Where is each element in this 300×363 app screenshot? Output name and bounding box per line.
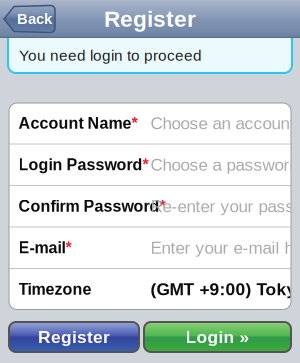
button[interactable]: E-mail: [9, 227, 290, 268]
staticText: *: [159, 197, 165, 215]
button[interactable]: Login Password: [9, 144, 290, 185]
staticText: Back: [17, 11, 52, 27]
staticText: Re-enter your password: [150, 197, 300, 216]
staticText: Choose a password: [150, 155, 298, 174]
button[interactable]: Timezone: [9, 269, 290, 309]
staticText: Login Password: [18, 156, 142, 174]
staticText: *: [65, 239, 71, 257]
staticText: (GMT +9:00) Tokyo: [150, 280, 300, 299]
button[interactable]: Register: [9, 322, 139, 352]
staticText: *: [142, 156, 148, 174]
staticText: Register: [38, 327, 110, 347]
staticText: *: [131, 114, 137, 132]
button[interactable]: Confirm Password: [9, 186, 290, 226]
staticText: Timezone: [18, 280, 91, 298]
staticText: Register: [104, 6, 196, 32]
staticText: Login »: [185, 327, 249, 347]
button[interactable]: Account Name: [9, 103, 290, 143]
staticText: Enter your e-mail here: [150, 238, 300, 257]
staticText: You need login to proceed: [19, 47, 202, 64]
staticText: Account Name: [18, 114, 131, 132]
button[interactable]: Back: [4, 5, 55, 32]
staticText: E-mail: [18, 239, 65, 257]
staticText: Confirm Password: [18, 197, 159, 215]
staticText: Choose an account name: [150, 114, 300, 133]
button[interactable]: Login »: [144, 322, 291, 352]
